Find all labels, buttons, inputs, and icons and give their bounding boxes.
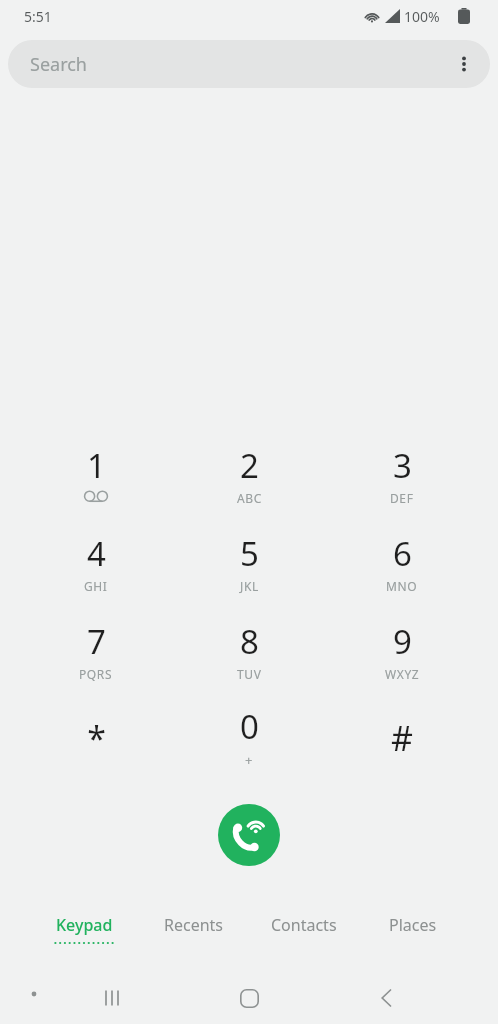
button[interactable]: 1 <box>36 439 156 523</box>
button[interactable]: 6 <box>342 527 462 611</box>
button[interactable]: 7 <box>36 615 156 699</box>
staticText: Recents <box>164 914 224 936</box>
staticText: Contacts <box>271 914 337 936</box>
staticText: + <box>245 751 253 769</box>
staticText: 8 <box>240 619 259 664</box>
button[interactable]: 9 <box>342 615 462 699</box>
button[interactable]: Recents <box>139 905 249 957</box>
staticText: 5:51 <box>24 7 52 26</box>
staticText: 9 <box>393 619 412 664</box>
button[interactable]: Call <box>218 804 280 866</box>
button[interactable]: # <box>342 700 462 784</box>
button[interactable]: Search <box>8 40 490 88</box>
staticText: DEF <box>390 490 414 506</box>
staticText: 6 <box>393 531 412 576</box>
staticText: 0 <box>240 704 259 749</box>
staticText: 5 <box>240 531 259 576</box>
staticText: 7 <box>87 619 106 664</box>
staticText: 3 <box>393 443 412 488</box>
button[interactable]: * <box>36 700 156 784</box>
button[interactable]: 3 <box>342 439 462 523</box>
staticText: PQRS <box>79 666 113 682</box>
button[interactable]: Back <box>363 974 411 1022</box>
button[interactable]: Home <box>225 974 273 1022</box>
button[interactable]: 2 <box>189 439 309 523</box>
staticText: GHI <box>84 578 108 594</box>
staticText: Search <box>30 52 87 77</box>
staticText: WXYZ <box>385 666 420 682</box>
staticText: 100% <box>404 7 440 26</box>
button[interactable]: Recents <box>88 974 136 1022</box>
staticText: * <box>87 715 106 761</box>
button[interactable]: Contacts <box>249 905 359 957</box>
button[interactable]: Places <box>358 905 468 957</box>
button[interactable]: 0 <box>189 700 309 784</box>
staticText: JKL <box>240 578 259 594</box>
staticText: MNO <box>386 578 418 594</box>
staticText: 2 <box>240 443 259 488</box>
staticText: 1 <box>87 443 106 488</box>
button[interactable]: 4 <box>36 527 156 611</box>
button[interactable]: 8 <box>189 615 309 699</box>
staticText: Places <box>389 914 437 936</box>
staticText: TUV <box>237 666 262 682</box>
button[interactable]: Keypad <box>29 905 139 957</box>
button[interactable]: 5 <box>189 527 309 611</box>
staticText: ABC <box>237 490 262 506</box>
staticText: # <box>391 715 413 761</box>
staticText: Keypad <box>56 914 113 936</box>
staticText: 4 <box>87 531 106 576</box>
button[interactable]: More options <box>440 40 488 88</box>
